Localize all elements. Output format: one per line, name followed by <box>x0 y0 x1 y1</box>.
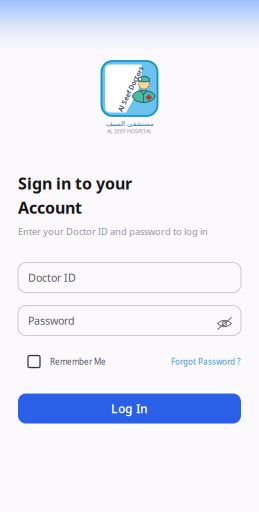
staticText: Remember Me <box>50 356 106 367</box>
button[interactable]: Remember Me <box>18 355 106 367</box>
staticText: Enter your Doctor ID and password to log… <box>18 225 208 237</box>
button[interactable]: Forgot Password ? <box>171 356 241 367</box>
staticText: Doctor ID <box>28 270 76 285</box>
staticText: Account <box>18 197 82 218</box>
staticText: Log In <box>111 401 148 416</box>
button[interactable]: Doctor ID <box>18 262 241 292</box>
staticText: Forgot Password ? <box>171 356 241 367</box>
staticText: Password <box>28 313 75 328</box>
staticText: Sign in to your <box>18 173 132 194</box>
staticText: Al Seef Doctors <box>106 85 155 93</box>
staticText: AL SEEF HOSPITAL <box>107 128 152 135</box>
staticText: مستشفى السيف <box>105 120 153 128</box>
button[interactable]: Log In <box>18 393 241 423</box>
button[interactable]: Password <box>18 305 241 335</box>
